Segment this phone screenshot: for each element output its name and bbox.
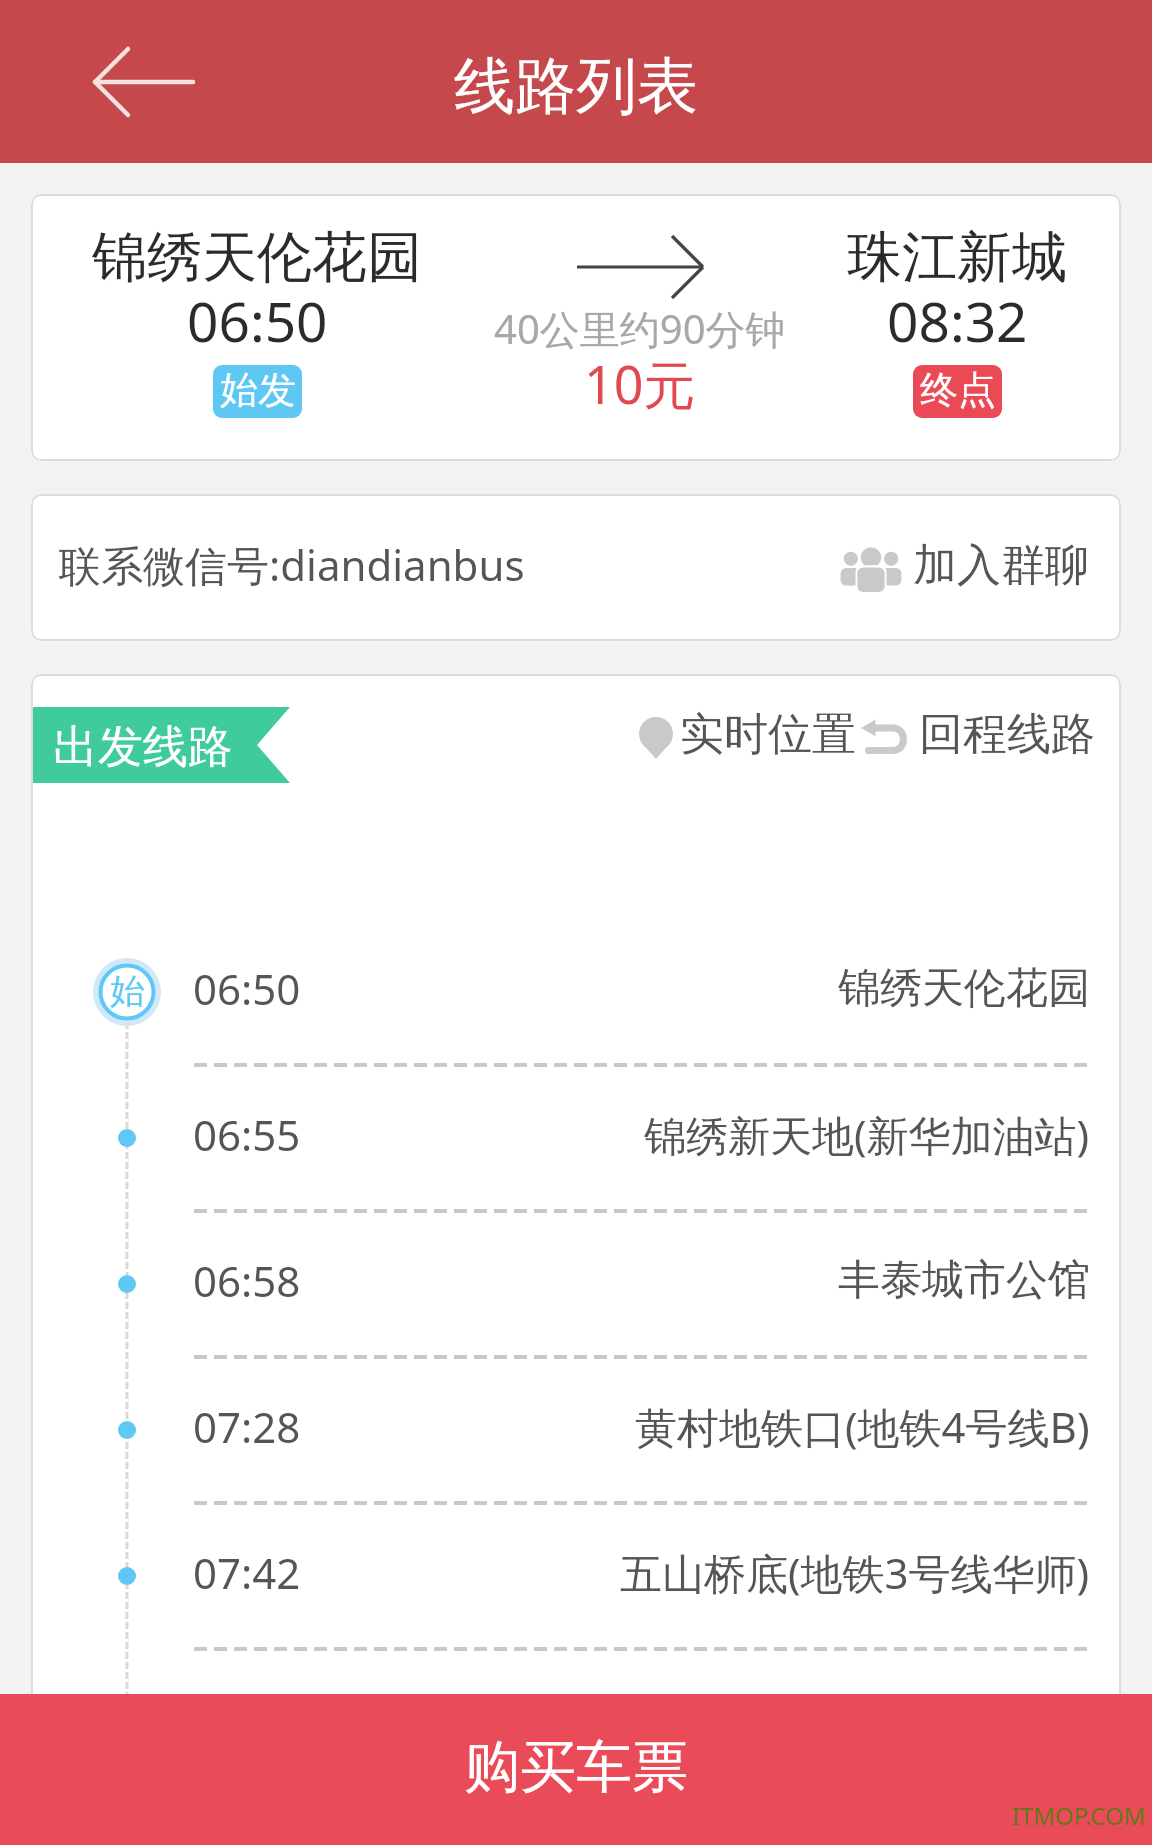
staticText: 锦绣天伦花园 [92,223,422,292]
staticText: 06:50 [193,960,301,1017]
button[interactable]: 联系微信号:diandianbus [59,494,1089,641]
staticText: 06:55 [193,1106,301,1163]
staticText: 联系微信号:diandianbus [59,536,525,593]
staticText: 07:28 [193,1398,301,1455]
button[interactable]: 出发线路 [31,707,290,783]
staticText: 终点 [920,366,996,414]
button[interactable]: 购买车票 [0,1694,1152,1845]
button[interactable]: Back [64,37,214,127]
button[interactable]: 锦绣天伦花园 [31,194,1121,461]
button[interactable]: 加入群聊 [840,540,1089,595]
staticText: 珠江新城 [847,223,1067,292]
staticText: 06:58 [193,1252,301,1309]
button[interactable]: 06:55 [31,1065,1121,1211]
staticText: 回程线路 [919,707,1095,762]
staticText: 五山桥底(地铁3号线华师) [620,1544,1090,1601]
staticText: 出发线路 [53,719,233,776]
staticText: 40公里约90分钟 [494,301,786,356]
staticText: 10元 [584,348,696,419]
button[interactable]: 实时位置 [639,710,856,765]
button[interactable]: 06:58 [31,1211,1121,1357]
staticText: 06:50 [187,283,328,358]
staticText: 实时位置 [680,707,856,762]
staticText: 锦绣天伦花园 [838,962,1090,1015]
staticText: 线路列表 [454,48,698,125]
staticText: 锦绣新天地(新华加油站) [644,1106,1090,1163]
button[interactable]: 06:50 [31,919,1121,1065]
staticText: 始 [110,969,145,1013]
staticText: 08:32 [887,283,1028,358]
button[interactable]: 回程线路 [860,710,1095,765]
button[interactable]: 07:28 [31,1357,1121,1503]
staticText: 始发 [220,366,296,414]
staticText: ITMOP.COM [1012,1799,1146,1832]
staticText: 购买车票 [464,1732,688,1803]
staticText: 丰泰城市公馆 [838,1254,1090,1307]
button[interactable]: 07:42 [31,1503,1121,1649]
staticText: 07:42 [193,1544,301,1601]
staticText: 黄村地铁口(地铁4号线B) [635,1398,1090,1455]
staticText: 加入群聊 [913,538,1089,593]
